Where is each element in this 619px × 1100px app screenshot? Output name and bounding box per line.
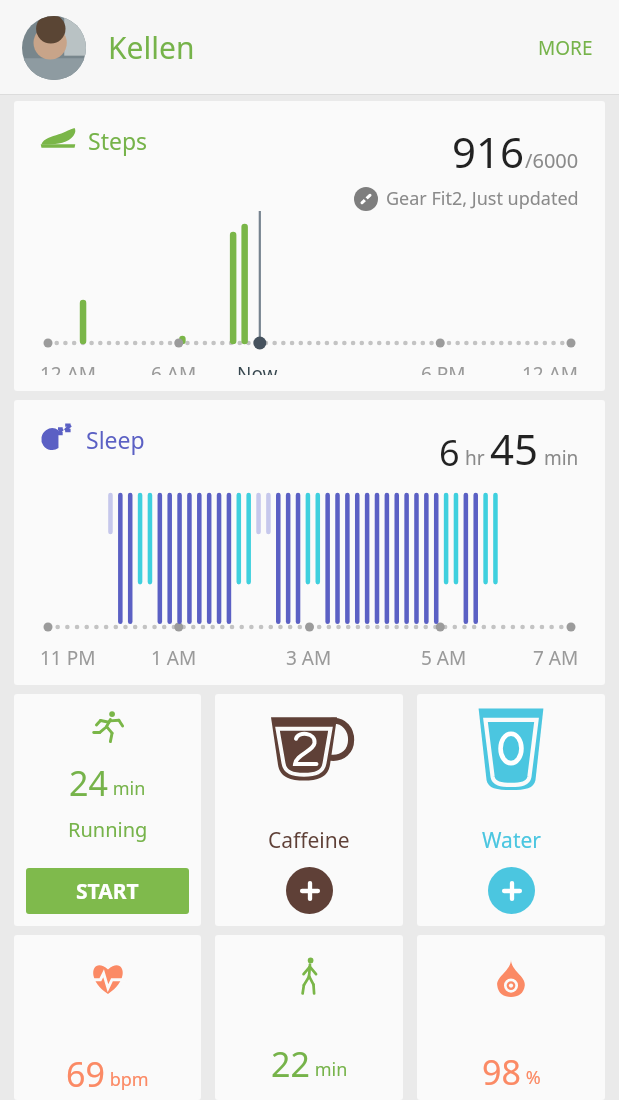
button[interactable]: Profile photo	[22, 16, 86, 80]
staticText: 6 PM	[421, 361, 466, 375]
staticText: 6 AM	[151, 361, 197, 375]
staticText: 11 PM	[40, 645, 96, 669]
staticText: 5 AM	[421, 645, 467, 669]
staticText: MORE	[538, 35, 593, 61]
staticText: 24	[69, 760, 108, 806]
button[interactable]: 22	[215, 935, 403, 1100]
staticText: 3 AM	[286, 645, 332, 669]
staticText: Caffeine	[268, 826, 350, 855]
staticText: Now	[237, 361, 278, 375]
staticText: Gear Fit2, Just updated	[386, 186, 579, 211]
staticText: 22	[271, 1041, 310, 1087]
button[interactable]: Add water	[488, 867, 535, 914]
button[interactable]: START	[26, 868, 189, 914]
staticText: 45	[490, 420, 539, 477]
staticText: 1 AM	[151, 645, 197, 669]
button[interactable]: Water	[417, 694, 605, 926]
staticText: min	[539, 445, 579, 471]
staticText: Sleep	[86, 424, 145, 455]
button[interactable]: Add caffeine	[286, 867, 333, 914]
staticText: Kellen	[108, 27, 195, 68]
staticText: 69	[66, 1051, 105, 1097]
button[interactable]: MORE	[528, 25, 603, 71]
staticText: 12 AM	[522, 361, 579, 375]
staticText: min	[310, 1057, 348, 1082]
staticText: hr	[460, 445, 490, 471]
button[interactable]: 98	[417, 935, 605, 1100]
staticText: /6000	[525, 147, 579, 174]
staticText: Steps	[88, 125, 148, 156]
staticText: 12 AM	[40, 361, 97, 375]
staticText: 98	[482, 1049, 521, 1095]
staticText: Water	[482, 826, 541, 855]
button[interactable]: 24	[14, 694, 201, 926]
staticText: %	[521, 1065, 541, 1090]
staticText: 6	[439, 428, 460, 477]
button[interactable]: 69	[14, 935, 201, 1100]
staticText: 916	[452, 123, 525, 180]
button[interactable]: Sleep	[14, 400, 605, 685]
staticText: Running	[68, 816, 148, 843]
staticText: min	[108, 776, 146, 801]
staticText: START	[76, 877, 139, 906]
staticText: 7 AM	[533, 645, 579, 669]
staticText: bpm	[105, 1067, 149, 1092]
button[interactable]: Caffeine	[215, 694, 403, 926]
button[interactable]: Steps	[14, 101, 605, 391]
